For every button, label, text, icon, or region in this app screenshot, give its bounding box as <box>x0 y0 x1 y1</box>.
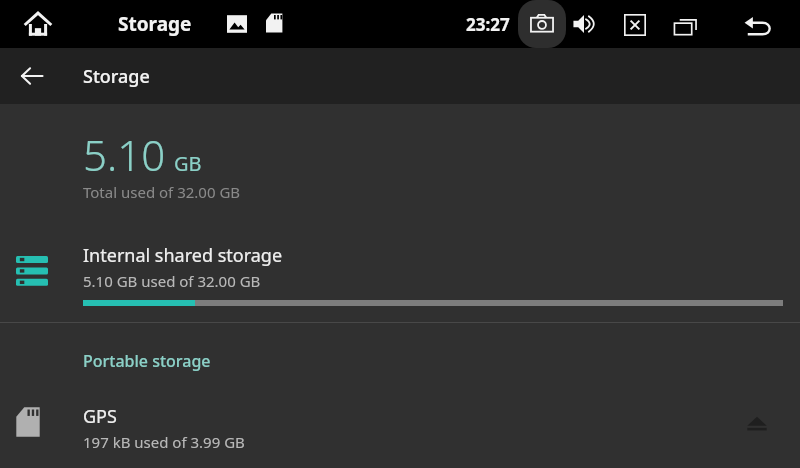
staticText: Portable storage <box>83 350 211 372</box>
staticText: Internal shared storage <box>83 243 283 268</box>
button[interactable]: GPS <box>0 392 800 464</box>
staticText: 5.10 GB used of 32.00 GB <box>83 271 261 291</box>
button[interactable]: Internal shared storage <box>0 230 800 322</box>
button[interactable]: Home <box>22 8 54 40</box>
staticText: GB <box>174 150 202 177</box>
button[interactable]: Back <box>740 8 776 44</box>
button[interactable]: Volume <box>570 10 598 38</box>
staticText: 23:27 <box>466 13 510 36</box>
staticText: GPS <box>83 404 117 429</box>
staticText: Total used of 32.00 GB <box>83 182 241 202</box>
button[interactable]: Recent apps <box>670 12 700 42</box>
staticText: Storage <box>118 11 192 37</box>
staticText: Storage <box>83 64 150 89</box>
button[interactable]: Gallery <box>226 13 248 35</box>
button[interactable]: SD card <box>262 11 286 35</box>
staticText: 197 kB used of 3.99 GB <box>83 432 245 452</box>
button[interactable]: Eject <box>736 402 778 444</box>
button[interactable]: Screenshot <box>518 0 566 48</box>
staticText: 5.10 <box>83 126 166 183</box>
button[interactable]: Close <box>622 12 648 38</box>
button[interactable]: Navigate up <box>16 60 48 92</box>
